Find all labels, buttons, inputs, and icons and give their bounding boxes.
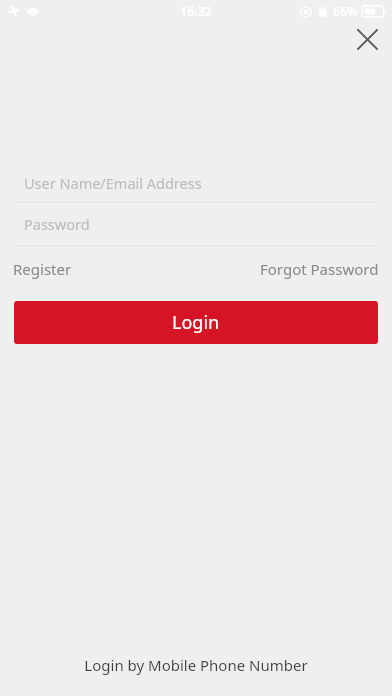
staticText: Login bbox=[172, 310, 220, 335]
staticText: User Name/Email Address bbox=[24, 173, 202, 193]
button[interactable]: Close bbox=[350, 22, 384, 56]
button[interactable]: Login bbox=[14, 301, 378, 344]
staticText: 66% bbox=[333, 3, 358, 20]
button[interactable]: User Name/Email Address bbox=[0, 164, 392, 202]
button[interactable]: Login by Mobile Phone Number bbox=[72, 651, 320, 679]
staticText: Login by Mobile Phone Number bbox=[84, 655, 308, 675]
staticText: Password bbox=[24, 214, 90, 234]
button[interactable]: Forgot Password bbox=[258, 255, 381, 283]
button[interactable]: Password bbox=[0, 203, 392, 245]
staticText: 16:32 bbox=[180, 3, 213, 20]
staticText: Register bbox=[13, 259, 72, 279]
button[interactable]: Register bbox=[11, 255, 74, 283]
staticText: Forgot Password bbox=[260, 259, 379, 279]
